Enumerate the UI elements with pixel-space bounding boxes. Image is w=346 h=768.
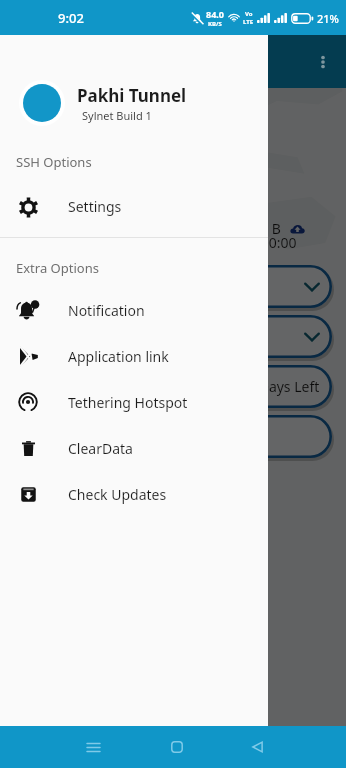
- staticText: 21%: [317, 11, 339, 26]
- staticText: Pakhi Tunnel: [77, 84, 187, 107]
- button[interactable]: Notification: [0, 287, 268, 333]
- staticText: ClearData: [68, 439, 133, 458]
- staticText: Extra Options: [16, 259, 99, 277]
- button[interactable]: Application link: [0, 333, 268, 379]
- staticText: Vo: [245, 10, 253, 18]
- button[interactable]: ClearData: [0, 425, 268, 471]
- button[interactable]: Tethering Hotspot: [0, 379, 268, 425]
- staticText: Tethering Hotspot: [68, 393, 188, 412]
- staticText: Settings: [68, 197, 122, 216]
- button[interactable]: Home: [155, 726, 199, 768]
- staticText: KB/S: [208, 20, 222, 28]
- button[interactable]: Settings: [0, 193, 268, 220]
- staticText: Check Updates: [68, 485, 167, 504]
- button[interactable]: Back: [235, 726, 279, 768]
- staticText: Notification: [68, 301, 145, 320]
- staticText: 84.0: [206, 8, 224, 20]
- staticText: 0 B: [260, 219, 281, 238]
- button[interactable]: Check Updates: [0, 471, 268, 517]
- staticText: 9:02: [58, 9, 84, 27]
- staticText: 00:00:00: [241, 233, 297, 252]
- staticText: LTE: [243, 18, 254, 26]
- staticText: 30 Days Left: [239, 377, 320, 396]
- staticText: Sylnet Build 1: [82, 108, 152, 123]
- staticText: Application link: [68, 347, 169, 366]
- button[interactable]: Recents: [71, 726, 115, 768]
- button[interactable]: More options: [310, 49, 336, 75]
- staticText: SSH Options: [16, 153, 92, 171]
